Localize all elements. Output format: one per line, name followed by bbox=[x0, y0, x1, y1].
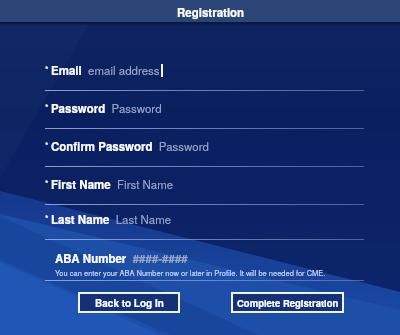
staticText: ABA Number ####-#### bbox=[55, 250, 188, 267]
button[interactable]: * Email email address bbox=[45, 59, 364, 92]
staticText: * Email email address bbox=[45, 62, 160, 79]
button[interactable]: * First Name First Name bbox=[45, 173, 364, 206]
button[interactable]: * Last Name Last Name bbox=[45, 208, 364, 241]
button[interactable]: Back to Log In bbox=[78, 292, 180, 313]
staticText: Registration bbox=[177, 4, 245, 20]
staticText: * Last Name Last Name bbox=[45, 211, 172, 228]
staticText: * Confirm Password Password bbox=[45, 138, 209, 155]
button[interactable]: * Confirm Password Password bbox=[45, 135, 364, 168]
staticText: * Password Password bbox=[45, 100, 162, 117]
button[interactable]: ABA Number ####-#### bbox=[45, 247, 364, 283]
staticText: You can enter your ABA Number now or lat… bbox=[55, 267, 326, 278]
staticText: Back to Log In bbox=[95, 296, 164, 310]
staticText: Complete Registration bbox=[237, 296, 339, 310]
button[interactable]: Complete Registration bbox=[231, 292, 344, 313]
button[interactable]: * Password Password bbox=[45, 97, 364, 130]
staticText: * First Name First Name bbox=[45, 176, 174, 193]
